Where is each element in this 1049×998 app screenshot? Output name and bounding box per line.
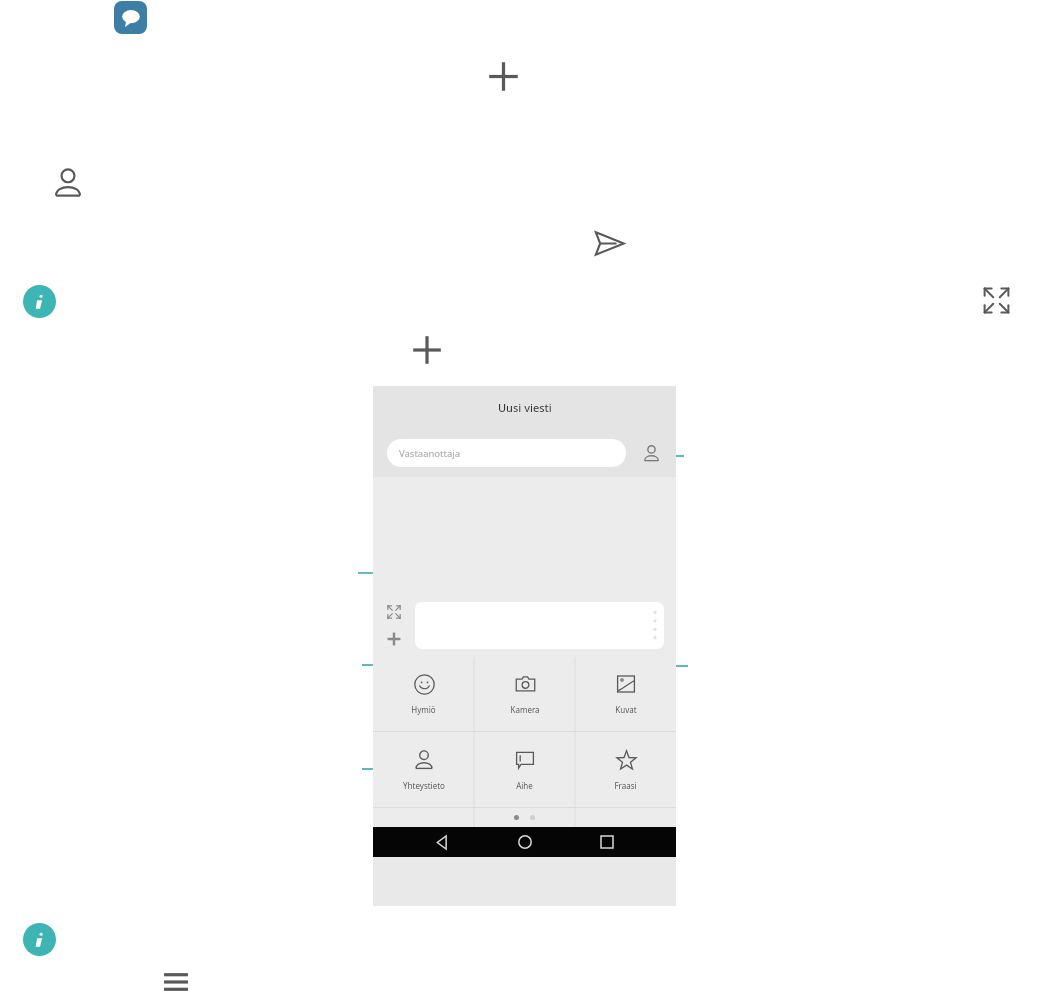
- button[interactable]: Information: [23, 285, 56, 318]
- button[interactable]: Add attachment: [384, 629, 404, 649]
- staticText: Aihe: [516, 780, 533, 791]
- button[interactable]: Expand: [384, 602, 404, 622]
- staticText: Uusi viesti: [498, 400, 552, 415]
- button[interactable]: Recents: [594, 829, 620, 855]
- button[interactable]: Contact: [50, 165, 85, 200]
- button[interactable]: Send: [590, 224, 628, 262]
- button[interactable]: Hymiö: [373, 657, 474, 731]
- staticText: Yhteystieto: [403, 780, 445, 791]
- button[interactable]: Information: [23, 923, 56, 956]
- button[interactable]: Fraasi: [575, 732, 676, 807]
- staticText: Vastaanottaja: [399, 447, 461, 460]
- staticText: Fraasi: [614, 780, 637, 791]
- button[interactable]: Kamera: [474, 657, 575, 731]
- button[interactable]: Aihe: [474, 732, 575, 807]
- button[interactable]: Expand: [979, 283, 1014, 318]
- staticText: Kamera: [510, 704, 540, 715]
- staticText: Hymiö: [411, 704, 436, 715]
- button[interactable]: Home: [512, 829, 538, 855]
- staticText: Kuvat: [615, 704, 637, 715]
- button[interactable]: Pick contact: [640, 442, 662, 464]
- button[interactable]: Kuvat: [575, 657, 676, 731]
- button[interactable]: Messaging app: [114, 1, 147, 34]
- button[interactable]: Vastaanottaja: [387, 439, 626, 467]
- button[interactable]: Menu: [160, 966, 191, 997]
- button[interactable]: Yhteystieto: [373, 732, 474, 807]
- button[interactable]: Back: [429, 829, 455, 855]
